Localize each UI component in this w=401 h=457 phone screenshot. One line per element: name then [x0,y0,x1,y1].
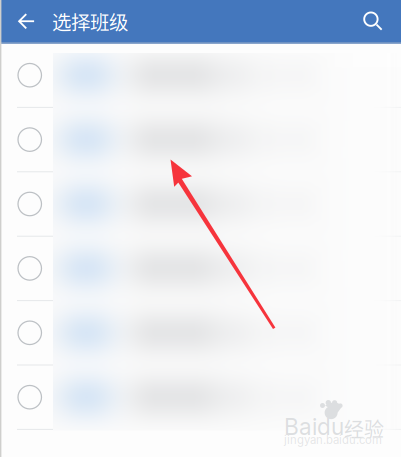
button[interactable] [0,43,401,108]
staticText: 选择班级 [52,7,128,35]
button[interactable] [0,301,401,365]
button[interactable] [0,108,401,172]
button[interactable]: Search [345,0,401,42]
button[interactable] [0,237,401,301]
staticText: jingyan.baidu.com [284,433,382,447]
button[interactable] [0,172,401,237]
button[interactable]: Back [0,0,52,42]
staticText: 经验 [344,414,384,443]
button[interactable] [0,365,401,430]
staticText: Baidu [284,413,344,440]
